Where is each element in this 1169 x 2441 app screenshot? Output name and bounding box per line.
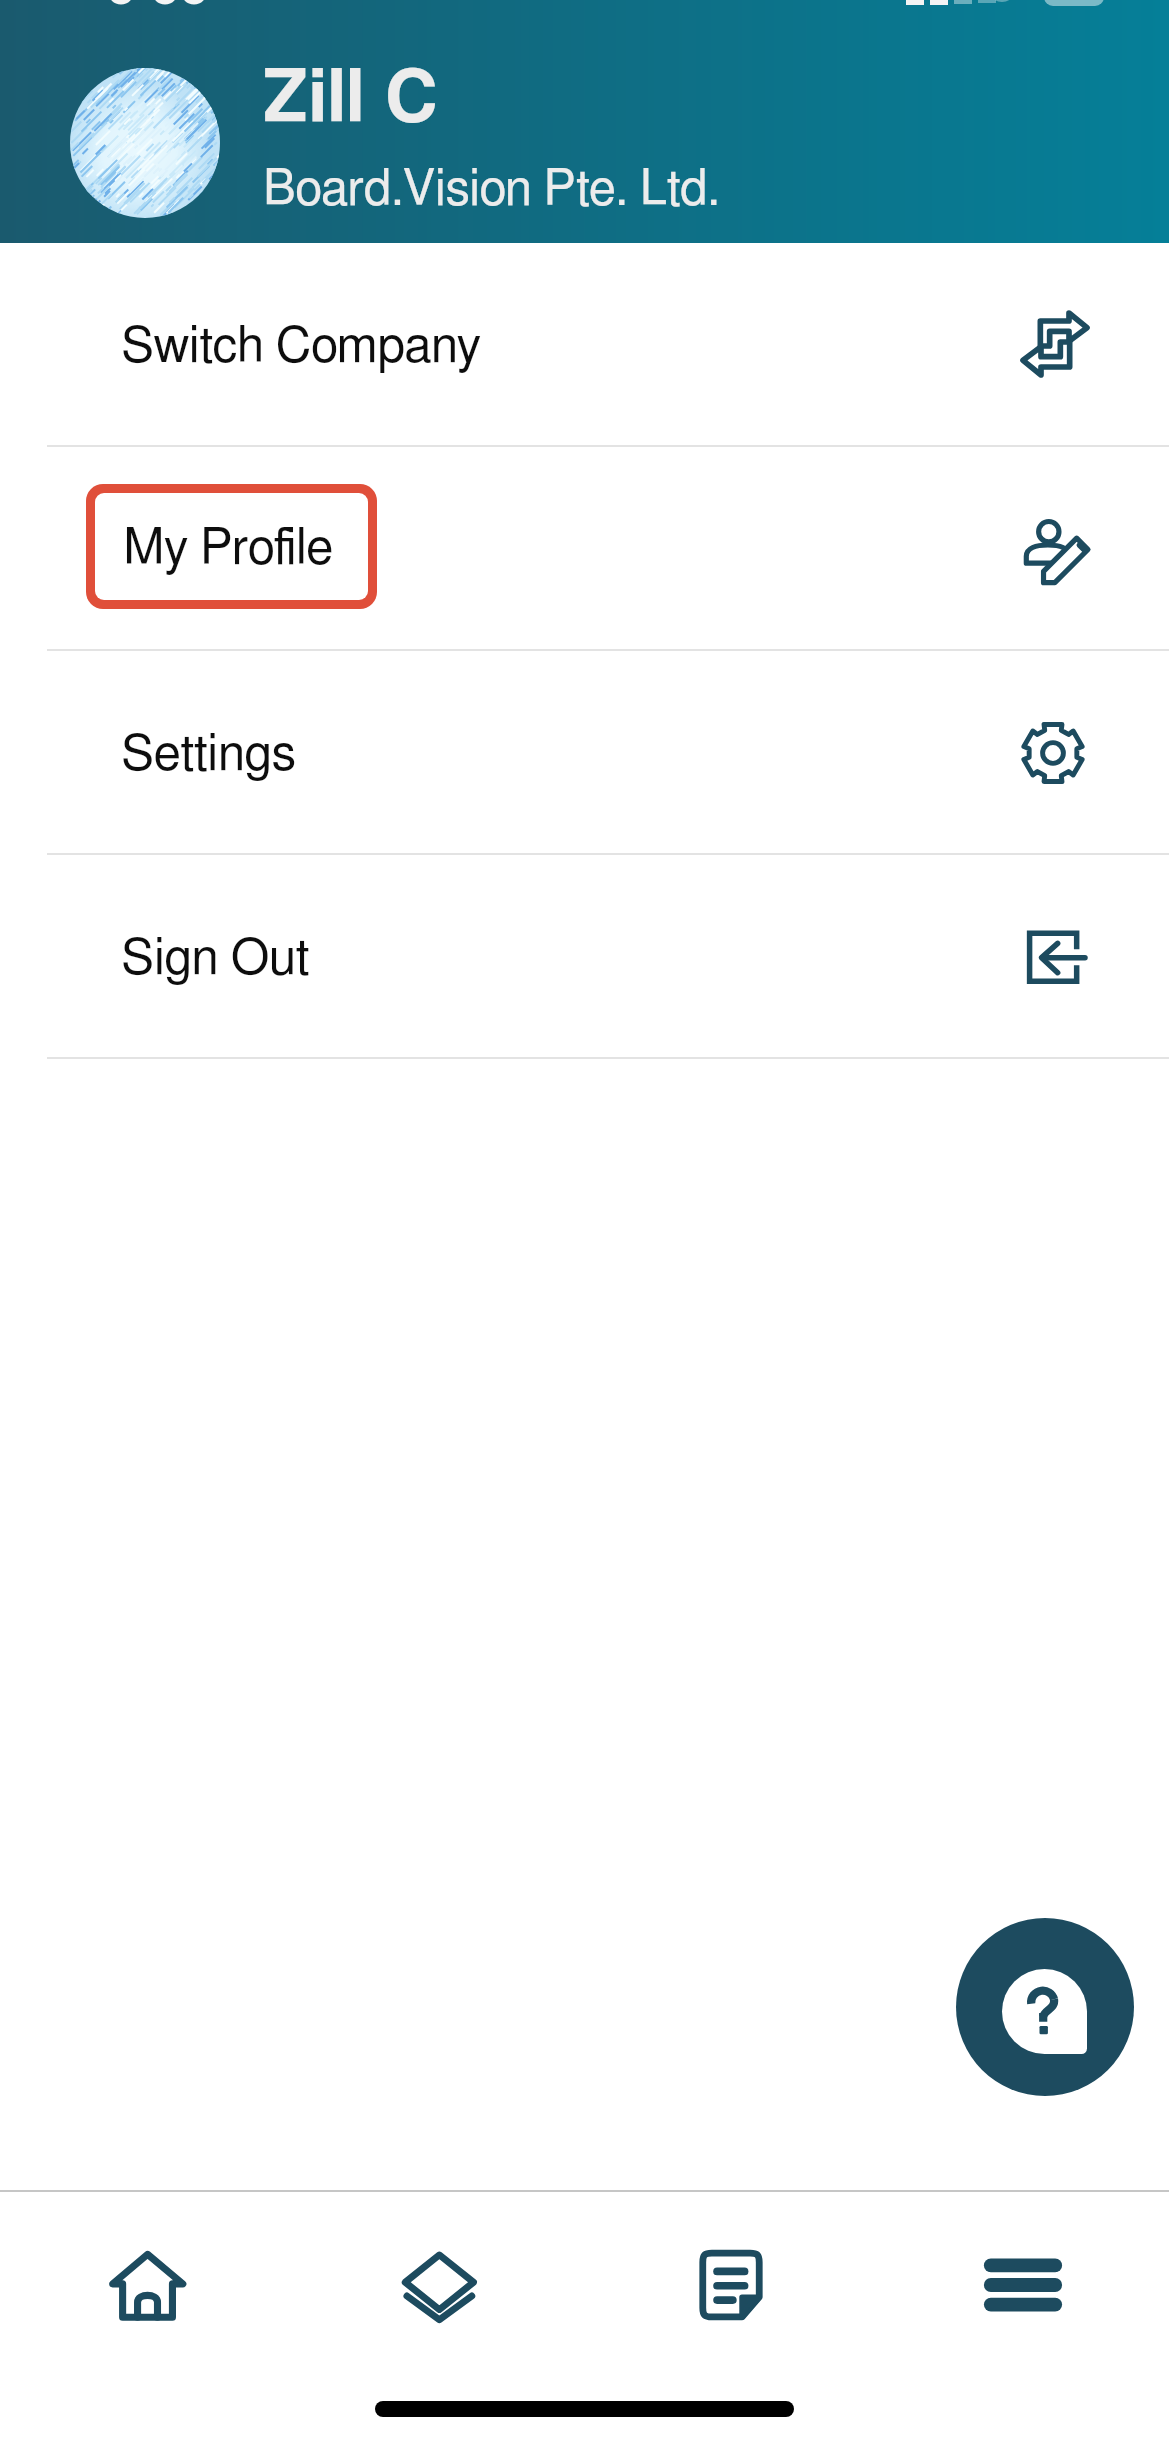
button[interactable]: My Profile	[0, 447, 1169, 649]
button[interactable]: Home	[0, 2192, 292, 2352]
button[interactable]: Sign Out	[0, 855, 1169, 1057]
staticText: Switch Company	[121, 322, 481, 372]
staticText: Zill C	[263, 63, 438, 136]
button[interactable]: Documents	[585, 2192, 877, 2352]
button[interactable]: Menu	[877, 2192, 1169, 2352]
button[interactable]: Switch Company	[0, 243, 1169, 445]
button[interactable]: Layers	[292, 2192, 584, 2352]
staticText: My Profile	[123, 524, 333, 574]
staticText: Settings	[121, 730, 296, 780]
staticText: Sign Out	[121, 934, 310, 984]
button[interactable]: Settings	[0, 651, 1169, 853]
staticText: Board.Vision Pte. Ltd.	[263, 166, 720, 215]
button[interactable]: Help	[956, 1918, 1134, 2096]
